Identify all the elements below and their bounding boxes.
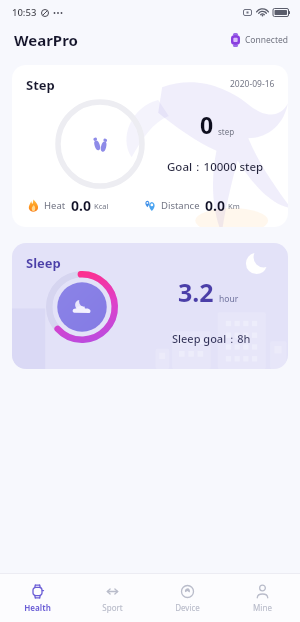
button[interactable]: Step (12, 65, 288, 227)
staticText: 10:53 (12, 6, 37, 19)
staticText: step (218, 126, 235, 137)
button[interactable]: Watch connected (229, 30, 290, 50)
staticText: 0.0 (205, 196, 225, 215)
staticText: Km (228, 201, 240, 211)
staticText: 0 (200, 109, 214, 140)
button[interactable]: Sport (75, 574, 150, 622)
staticText: Sleep goal：8h (172, 331, 251, 346)
staticText: Health (24, 602, 51, 613)
staticText: Heat (44, 199, 66, 212)
staticText: 0.0 (71, 196, 91, 215)
button[interactable]: Health (0, 574, 75, 622)
button[interactable]: Mine (225, 574, 300, 622)
staticText: Sport (102, 602, 123, 613)
staticText: Goal：10000 step (167, 159, 264, 175)
staticText: 3.2 (178, 275, 214, 309)
staticText: Step (26, 76, 55, 94)
staticText: Mine (253, 602, 272, 613)
other: Watch connected (231, 33, 240, 47)
button[interactable]: Device (150, 574, 225, 622)
staticText: Kcal (94, 201, 109, 211)
staticText: Sleep (26, 254, 61, 272)
button[interactable]: Sleep (12, 243, 288, 369)
staticText: Device (175, 602, 200, 613)
staticText: Distance (161, 199, 200, 212)
staticText: WearPro (14, 30, 78, 50)
staticText: hour (219, 293, 239, 305)
staticText: 2020-09-16 (230, 78, 275, 90)
staticText: Connected (245, 34, 288, 46)
